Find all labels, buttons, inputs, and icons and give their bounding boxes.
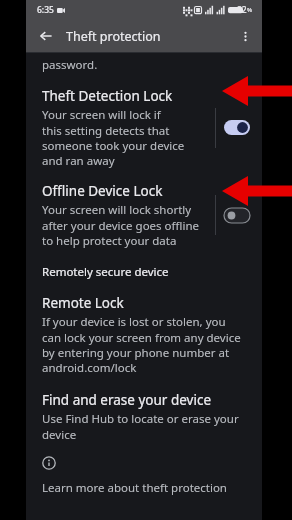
staticText: Use Find Hub to locate or erase your dev… [42, 411, 239, 442]
button[interactable]: Toggle off [224, 208, 250, 223]
staticText: % [247, 6, 253, 14]
staticText: 6:35 [37, 4, 54, 16]
button[interactable]: Back [32, 22, 60, 50]
staticText: Your screen will lock shortly after your… [42, 202, 199, 248]
staticText: Theft protection [66, 28, 161, 45]
staticText: Remotely secure device [42, 264, 169, 280]
button[interactable]: Remote Lock [42, 294, 252, 375]
staticText: Offline Device Lock [42, 182, 163, 200]
button[interactable]: Theft Detection Lock [42, 87, 252, 168]
staticText: password. [42, 57, 98, 73]
button[interactable]: Info [42, 456, 56, 470]
staticText: Find and erase your device [42, 391, 212, 409]
staticText: 82 [237, 4, 247, 16]
button[interactable]: Toggle on [224, 120, 250, 135]
staticText: Theft Detection Lock [42, 87, 173, 105]
button[interactable]: Find and erase your device [42, 391, 252, 442]
staticText: If your device is lost or stolen, you ca… [42, 314, 241, 375]
staticText: Your screen will lock if this setting de… [42, 107, 185, 168]
button[interactable]: More options [232, 23, 258, 49]
button[interactable]: Offline Device Lock [42, 182, 252, 248]
staticText: Learn more about theft protection [42, 480, 227, 496]
staticText: Remote Lock [42, 294, 124, 312]
